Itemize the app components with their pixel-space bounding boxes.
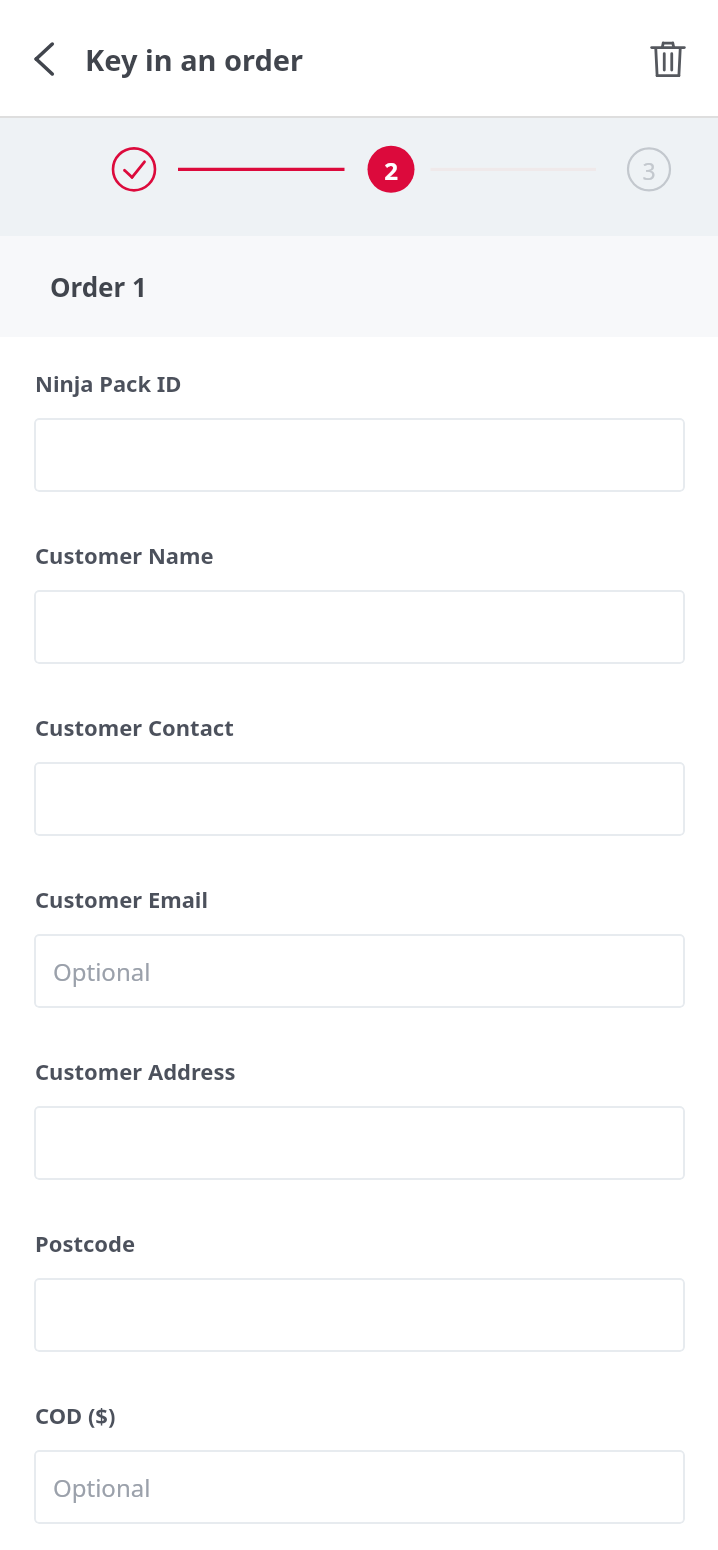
button[interactable] <box>34 590 685 664</box>
staticText: Key in an order <box>85 40 304 79</box>
staticText: Ninja Pack ID <box>35 368 182 398</box>
staticText: Customer Address <box>35 1056 236 1086</box>
staticText: Optional <box>53 955 151 988</box>
button[interactable]: Optional <box>34 934 685 1008</box>
button[interactable] <box>34 762 685 836</box>
staticText: COD ($) <box>35 1400 116 1430</box>
staticText: 3 <box>642 155 656 186</box>
staticText: 2 <box>384 154 398 187</box>
staticText: Customer Name <box>35 540 214 570</box>
button[interactable]: Optional <box>34 1450 685 1524</box>
button[interactable] <box>34 1278 685 1352</box>
staticText: Customer Contact <box>35 712 234 742</box>
staticText: Optional <box>53 1471 151 1504</box>
button[interactable] <box>34 418 685 492</box>
button[interactable] <box>34 1106 685 1180</box>
button[interactable]: Delete <box>636 27 700 91</box>
staticText: Postcode <box>35 1228 136 1258</box>
button[interactable]: Back <box>14 28 76 90</box>
staticText: Order 1 <box>50 269 147 304</box>
staticText: Customer Email <box>35 884 208 914</box>
